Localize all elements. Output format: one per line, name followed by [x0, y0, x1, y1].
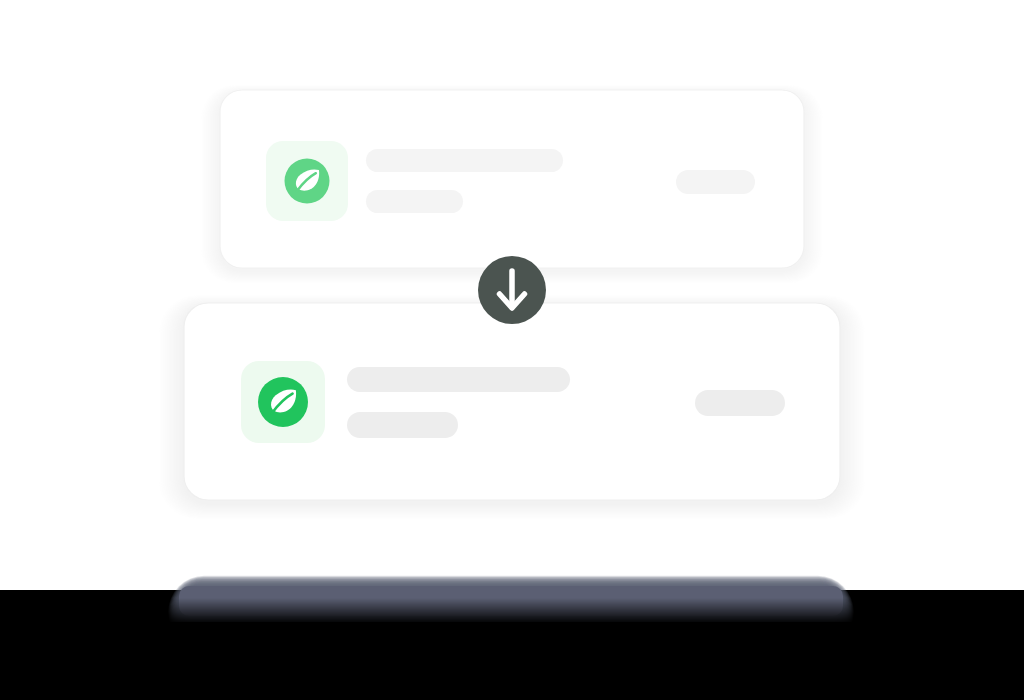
button[interactable]: Transfer down — [478, 256, 546, 324]
